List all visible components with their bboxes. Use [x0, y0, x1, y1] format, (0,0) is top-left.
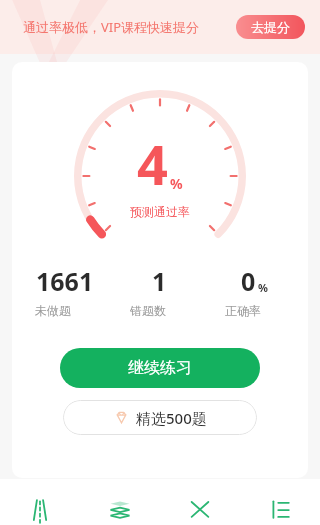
- button[interactable]: Tools: [160, 479, 240, 525]
- button[interactable]: Practice: [0, 479, 80, 525]
- staticText: 1661: [36, 264, 94, 298]
- staticText: 未做题: [35, 303, 95, 318]
- staticText: %: [258, 280, 268, 295]
- staticText: 错题数: [130, 303, 190, 318]
- staticText: 通过率极低，VIP课程快速提分: [23, 18, 200, 36]
- button[interactable]: Profile: [240, 479, 320, 525]
- staticText: 继续练习: [128, 358, 192, 378]
- staticText: 去提分: [251, 19, 290, 35]
- button[interactable]: 精选500题: [63, 400, 257, 435]
- staticText: 正确率: [225, 303, 285, 318]
- staticText: 1: [152, 264, 167, 298]
- button[interactable]: Courses: [80, 479, 160, 525]
- staticText: 精选500题: [136, 408, 207, 428]
- staticText: %: [170, 174, 183, 193]
- staticText: 0: [241, 264, 256, 298]
- button[interactable]: 继续练习: [60, 348, 260, 388]
- staticText: 预测通过率: [130, 204, 190, 219]
- staticText: 4: [137, 127, 168, 201]
- button[interactable]: 去提分: [236, 15, 305, 39]
